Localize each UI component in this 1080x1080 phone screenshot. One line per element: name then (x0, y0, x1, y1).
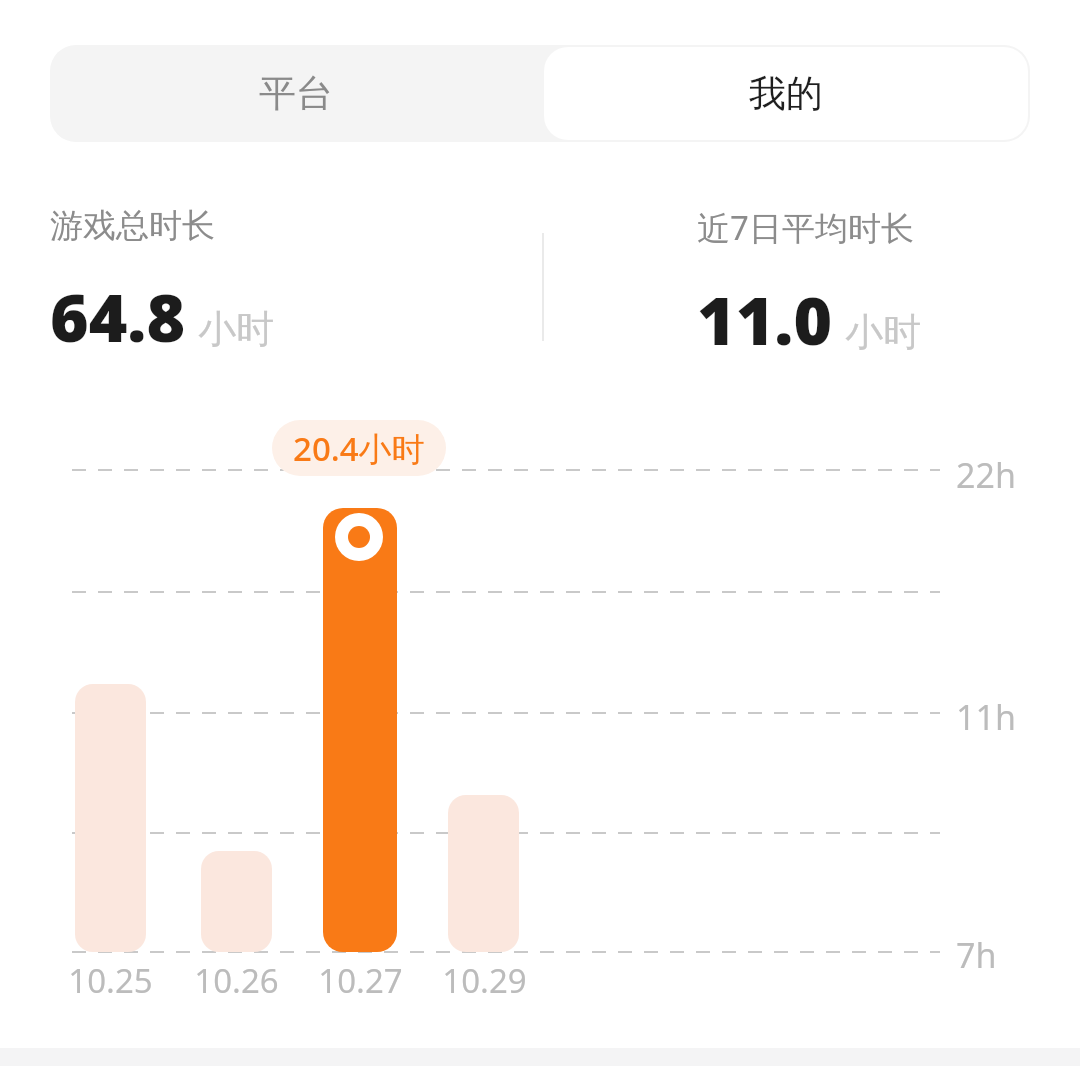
staticText: 10.29 (442, 958, 527, 1003)
button[interactable]: 我的 (544, 47, 1028, 140)
staticText: 小时 (845, 308, 921, 356)
staticText: 11.0 (697, 274, 833, 364)
staticText: 7h (956, 932, 997, 978)
staticText: 近7日平均时长 (697, 205, 914, 250)
button[interactable]: 平台 (50, 45, 542, 142)
staticText: 22h (956, 452, 1016, 498)
staticText: 平台 (259, 70, 333, 117)
staticText: 10.26 (194, 958, 279, 1003)
staticText: 小时 (198, 305, 274, 353)
staticText: 64.8 (50, 271, 186, 361)
staticText: 游戏总时长 (50, 205, 215, 247)
staticText: 我的 (749, 70, 823, 117)
staticText: 11h (956, 694, 1016, 740)
staticText: 10.25 (68, 958, 153, 1003)
staticText: 20.4小时 (293, 426, 425, 471)
staticText: 10.27 (318, 958, 403, 1003)
